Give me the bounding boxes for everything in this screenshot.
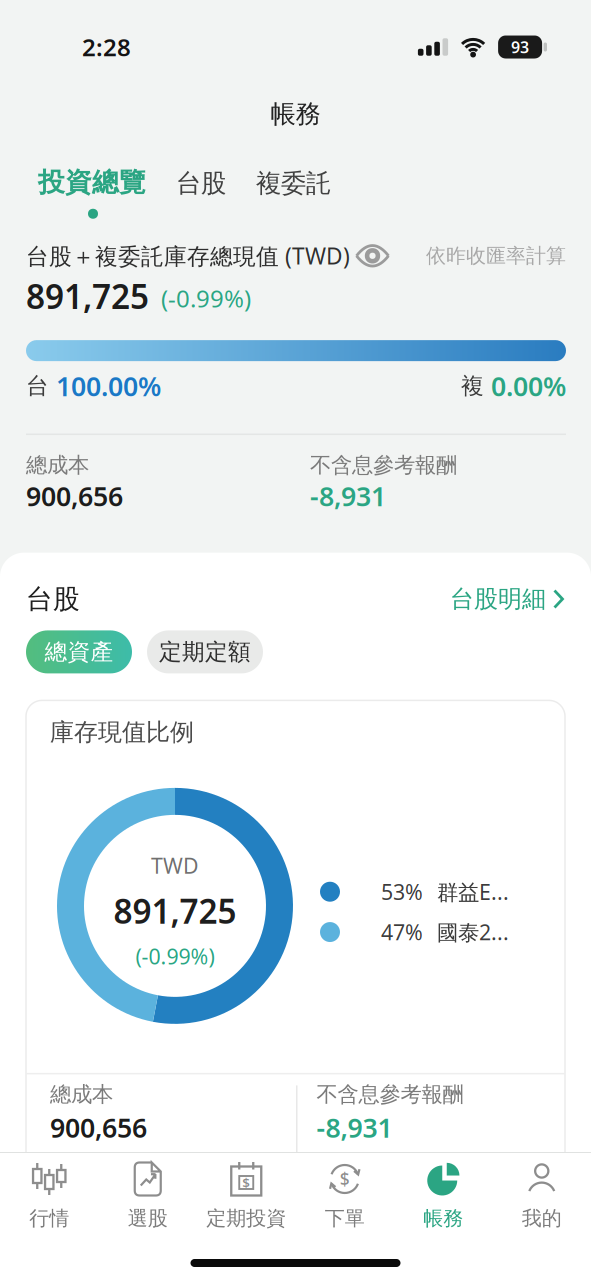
button[interactable]: 複委託 — [256, 168, 331, 199]
staticText: 帳務 — [423, 1206, 463, 1231]
button[interactable]: $ — [295, 1161, 394, 1231]
staticText: 國泰2... — [437, 918, 509, 946]
staticText: 定期投資 — [206, 1206, 286, 1231]
button[interactable]: 投資總覽 — [38, 166, 146, 199]
staticText: 複委託 — [256, 168, 331, 199]
button[interactable]: 總資產 — [26, 630, 132, 673]
staticText: 0.00% — [491, 368, 566, 403]
staticText: 不含息參考報酬 — [316, 1081, 463, 1108]
staticText: 2:28 — [82, 31, 131, 63]
button[interactable]: 隱藏金額 — [350, 244, 390, 268]
staticText: TWD — [151, 851, 199, 880]
staticText: 台 — [26, 372, 49, 400]
staticText: 複 — [461, 372, 484, 400]
staticText: 下單 — [325, 1206, 365, 1231]
staticText: 891,725 — [26, 274, 149, 318]
staticText: 台股 — [176, 168, 226, 199]
staticText: 總成本 — [26, 452, 89, 478]
staticText: 我的 — [522, 1206, 562, 1231]
staticText: 47% — [381, 918, 423, 946]
staticText: 93 — [511, 36, 529, 58]
staticText: 依昨收匯率計算 — [426, 243, 566, 268]
button[interactable]: $ — [197, 1161, 295, 1231]
staticText: $ — [340, 1167, 350, 1190]
staticText: 台股 — [26, 583, 80, 615]
staticText: 總成本 — [50, 1081, 113, 1108]
staticText: 台股＋複委託庫存總現值 (TWD) — [26, 241, 350, 271]
staticText: 定期定額 — [159, 638, 251, 666]
button[interactable]: 台股 — [176, 168, 226, 199]
button[interactable]: 選股 — [98, 1161, 197, 1231]
staticText: 庫存現值比例 — [50, 717, 194, 747]
staticText: 行情 — [29, 1206, 69, 1231]
staticText: (-0.99%) — [135, 942, 214, 970]
button[interactable]: 行情 — [0, 1161, 98, 1231]
button[interactable]: 定期定額 — [147, 630, 263, 673]
staticText: 53% — [381, 878, 423, 906]
staticText: 891,725 — [113, 889, 236, 933]
staticText: 總資產 — [44, 638, 113, 666]
staticText: 帳務 — [270, 98, 320, 129]
staticText: 投資總覽 — [38, 166, 146, 199]
staticText: 900,656 — [26, 478, 123, 514]
staticText: $ — [242, 1174, 250, 1191]
staticText: -8,931 — [310, 478, 386, 514]
button[interactable]: 我的 — [492, 1161, 591, 1231]
staticText: 900,656 — [50, 1110, 147, 1145]
staticText: 群益E... — [437, 878, 509, 906]
button[interactable]: 台股明細 — [450, 584, 565, 614]
staticText: 選股 — [128, 1206, 168, 1231]
button[interactable]: 帳務 — [394, 1161, 492, 1231]
staticText: (-0.99%) — [161, 282, 251, 314]
staticText: 100.00% — [56, 368, 161, 403]
staticText: 台股明細 — [450, 584, 546, 614]
staticText: 不含息參考報酬 — [310, 452, 457, 478]
staticText: -8,931 — [316, 1110, 392, 1145]
